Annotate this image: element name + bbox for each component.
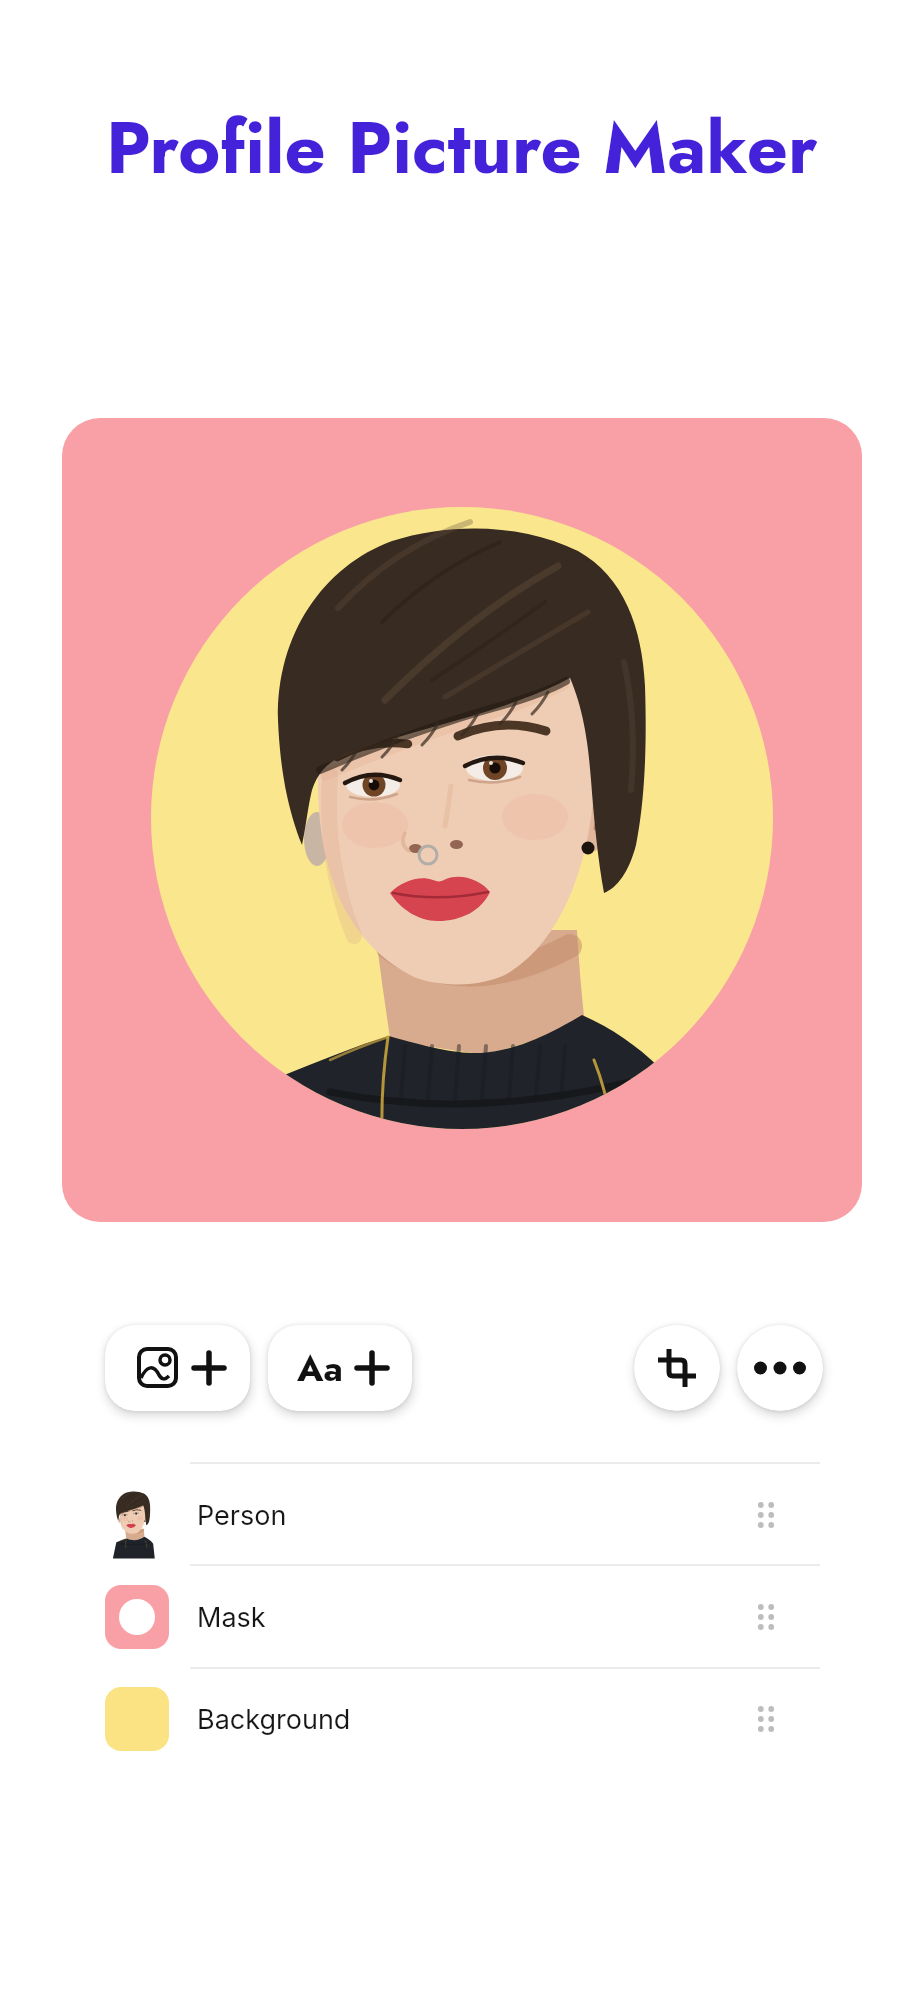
button[interactable] xyxy=(634,1325,720,1411)
button[interactable] xyxy=(105,1325,250,1411)
button[interactable] xyxy=(62,418,862,1222)
staticText: Profile Picture Maker xyxy=(106,96,818,200)
button[interactable] xyxy=(737,1325,823,1411)
staticText: Aa xyxy=(297,1342,343,1394)
staticText: Person xyxy=(197,1499,287,1532)
button[interactable]: Background xyxy=(0,1668,924,1770)
button[interactable]: Aa xyxy=(268,1325,412,1411)
button[interactable]: Mask xyxy=(0,1566,924,1668)
button[interactable]: Person xyxy=(0,1464,924,1566)
staticText: Background xyxy=(197,1703,351,1736)
staticText: Mask xyxy=(197,1601,266,1634)
